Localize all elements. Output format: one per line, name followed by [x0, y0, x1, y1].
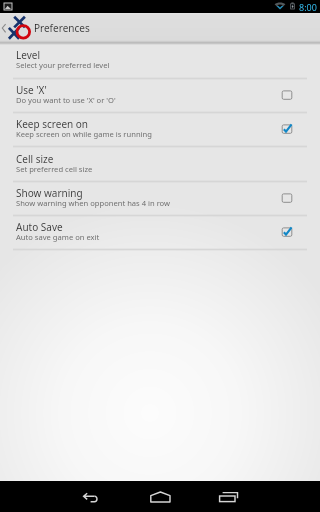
staticText: Use 'X' [16, 83, 47, 97]
button[interactable]: Level [0, 43, 320, 79]
button[interactable]: Auto Save [0, 216, 320, 250]
staticText: Level [16, 48, 40, 62]
button[interactable]: Recent apps [208, 481, 248, 512]
button[interactable]: Use 'X' [0, 79, 320, 113]
staticText: Show warning when opponent has 4 in row [16, 198, 171, 208]
staticText: Cell size [16, 152, 54, 166]
button[interactable]: Navigate up [0, 13, 320, 43]
staticText: Set preferred cell size [16, 164, 93, 174]
button[interactable]: Home [140, 481, 180, 512]
staticText: Select your preferred level [16, 60, 110, 70]
staticText: Keep screen on [16, 117, 89, 131]
button[interactable]: Keep screen on [0, 113, 320, 147]
button[interactable]: Cell size [0, 147, 320, 182]
staticText: Keep screen on while game is running [16, 129, 152, 139]
staticText: Auto Save [16, 220, 63, 234]
staticText: Show warning [16, 186, 83, 200]
staticText: Preferences [34, 21, 90, 35]
staticText: 8:00 [299, 1, 317, 13]
staticText: Auto save game on exit [16, 232, 100, 242]
button[interactable]: Back [72, 481, 112, 512]
button[interactable]: Show warning [0, 182, 320, 216]
staticText: Do you want to use 'X' or 'O' [16, 95, 116, 105]
